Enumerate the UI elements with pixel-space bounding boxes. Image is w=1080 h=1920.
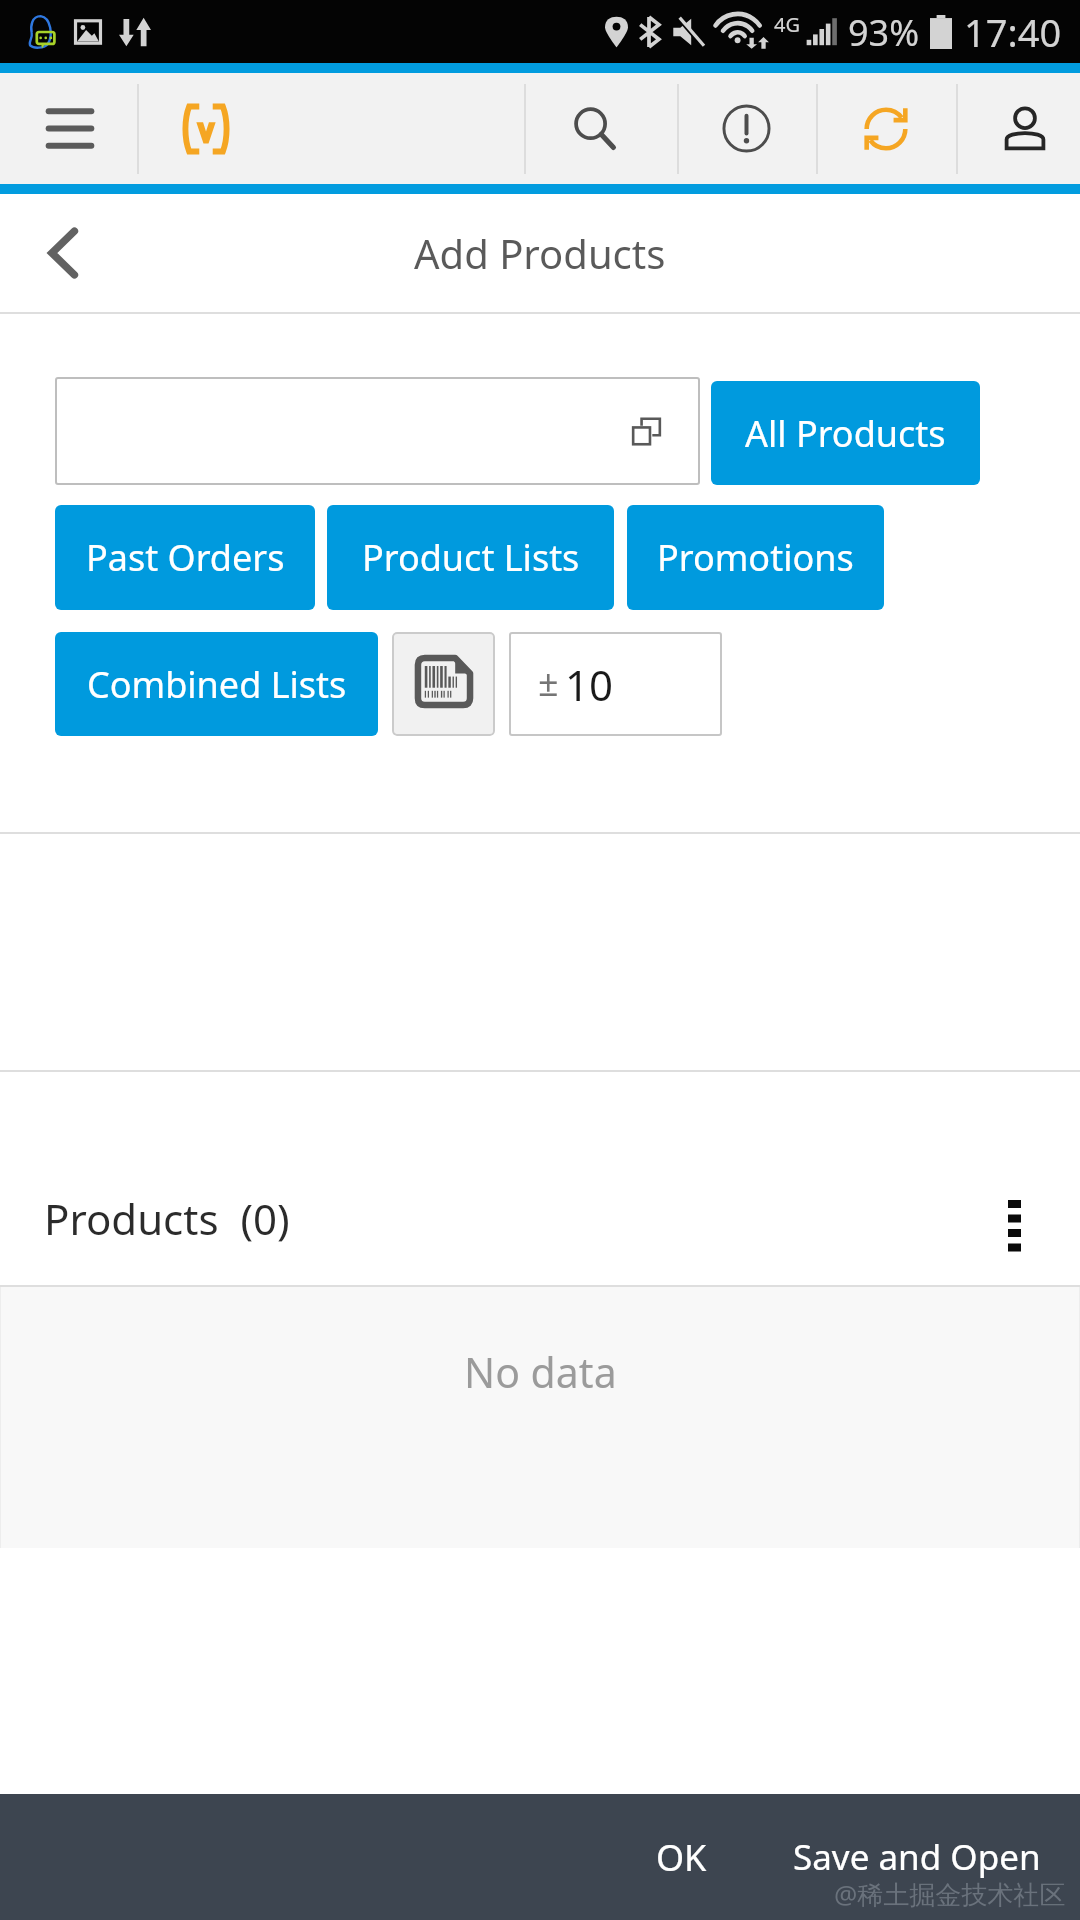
- button[interactable]: Home: [139, 73, 524, 184]
- button[interactable]: All Products: [711, 381, 980, 485]
- staticText: 17:40: [964, 6, 1062, 58]
- button[interactable]: Past Orders: [55, 505, 315, 610]
- button[interactable]: Promotions: [627, 505, 884, 610]
- button[interactable]: Product Lists: [327, 505, 614, 610]
- staticText: Past Orders: [86, 533, 285, 582]
- button[interactable]: Account: [958, 73, 1079, 184]
- staticText: Combined Lists: [87, 660, 347, 709]
- staticText: Save and Open: [793, 1833, 1041, 1881]
- button[interactable]: OK: [617, 1810, 745, 1904]
- staticText: 4G: [774, 11, 800, 38]
- staticText: Add Products: [414, 226, 666, 280]
- staticText: @稀土掘金技术社区: [834, 1876, 1066, 1912]
- staticText: No data: [464, 1344, 617, 1400]
- staticText: Product Lists: [362, 533, 580, 582]
- staticText: 93%: [848, 8, 920, 57]
- staticText: OK: [656, 1833, 707, 1882]
- staticText: ±: [538, 658, 559, 707]
- staticText: 10: [565, 656, 614, 713]
- button[interactable]: Refresh: [818, 73, 956, 184]
- button[interactable]: Product search field: [55, 377, 700, 485]
- button[interactable]: Save and Open: [767, 1810, 1067, 1904]
- button[interactable]: Menu: [0, 73, 137, 184]
- button[interactable]: Quantity step 10: [509, 632, 722, 736]
- button[interactable]: Search: [526, 73, 677, 184]
- staticText: Products (0): [44, 1190, 290, 1247]
- button[interactable]: Alerts: [679, 73, 816, 184]
- button[interactable]: Back: [0, 194, 130, 312]
- button[interactable]: Combined Lists: [55, 632, 378, 736]
- staticText: All Products: [745, 409, 946, 458]
- button[interactable]: Scan barcode: [392, 632, 495, 736]
- staticText: Promotions: [657, 533, 854, 582]
- button[interactable]: More options: [964, 1175, 1064, 1275]
